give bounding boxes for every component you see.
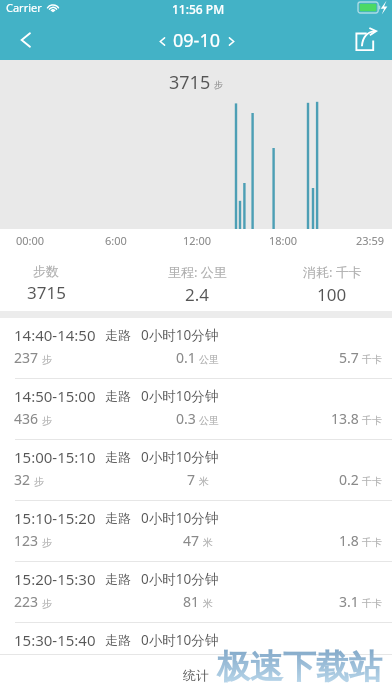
staticText: 15:00-15:10 — [14, 447, 96, 467]
button[interactable]: Back — [0, 20, 52, 60]
staticText: 步数 — [33, 263, 59, 279]
staticText: 3715 — [27, 281, 66, 304]
staticText: 步 — [42, 597, 52, 610]
button[interactable]: 里程: 公里 — [142, 255, 252, 306]
staticText: 100 — [317, 283, 347, 306]
staticText: 消耗: 千卡 — [303, 263, 362, 281]
staticText: 09-10 — [173, 28, 220, 53]
staticText: 走路 — [105, 632, 131, 648]
staticText: 81 — [183, 592, 200, 611]
staticText: 14:40-14:50 — [14, 325, 96, 345]
staticText: 7 — [187, 470, 196, 489]
staticText: 米 — [203, 597, 213, 610]
staticText: 15:30-15:40 — [14, 630, 96, 650]
staticText: 步 — [42, 536, 52, 549]
staticText: 走路 — [105, 510, 131, 526]
staticText: 走路 — [105, 449, 131, 465]
button[interactable]: Next day — [220, 30, 242, 52]
staticText: 12:00 — [183, 233, 212, 248]
staticText: 走路 — [105, 388, 131, 404]
staticText: 千卡 — [362, 353, 382, 366]
staticText: 6:00 — [105, 233, 127, 248]
button[interactable]: Share — [340, 20, 392, 60]
staticText: 1.8 — [339, 531, 359, 550]
staticText: 0.2 — [339, 470, 359, 489]
staticText: 千卡 — [362, 414, 382, 427]
staticText: 0小时10分钟 — [141, 570, 219, 588]
staticText: 极速下载站 — [217, 646, 382, 688]
staticText: 千卡 — [362, 475, 382, 488]
button[interactable]: 15:30-15:40 — [0, 623, 392, 684]
staticText: 15:10-15:20 — [14, 508, 96, 528]
button[interactable]: 步数 — [0, 255, 101, 304]
staticText: 223 — [14, 592, 39, 611]
staticText: 步 — [42, 414, 52, 427]
staticText: 00:00 — [16, 233, 45, 248]
staticText: 步 — [42, 353, 52, 366]
staticText: 0.1 — [176, 348, 196, 367]
button[interactable]: Previous day — [151, 30, 173, 52]
staticText: 123 — [14, 531, 39, 550]
staticText: 0.3 — [176, 409, 196, 428]
staticText: 13.8 — [331, 409, 359, 428]
staticText: 11:56 PM — [172, 1, 225, 17]
staticText: 2.4 — [185, 283, 210, 306]
staticText: Carrier — [6, 0, 42, 15]
staticText: 千卡 — [362, 536, 382, 549]
staticText: 走路 — [105, 327, 131, 343]
staticText: 步 — [34, 475, 44, 488]
staticText: 3.1 — [339, 592, 359, 611]
staticText: 公里 — [199, 414, 219, 427]
staticText: 步 — [214, 79, 223, 90]
button[interactable]: 统计 — [130, 654, 261, 696]
staticText: 32 — [14, 470, 31, 489]
button[interactable]: 14:40-14:50 — [0, 318, 392, 379]
staticText: 14:50-15:00 — [14, 386, 96, 406]
staticText: 23:59 — [356, 233, 385, 248]
staticText: 18:00 — [269, 233, 298, 248]
staticText: 0小时10分钟 — [141, 631, 219, 649]
staticText: 0小时10分钟 — [141, 387, 219, 405]
staticText: 0小时10分钟 — [141, 326, 219, 344]
staticText: 米 — [199, 475, 209, 488]
staticText: 436 — [14, 409, 39, 428]
staticText: 公里 — [199, 353, 219, 366]
button[interactable]: 15:20-15:30 — [0, 562, 392, 623]
staticText: 15:20-15:30 — [14, 569, 96, 589]
staticText: 237 — [14, 348, 39, 367]
staticText: 走路 — [105, 571, 131, 587]
staticText: 47 — [183, 531, 200, 550]
staticText: 5.7 — [339, 348, 359, 367]
staticText: 里程: 公里 — [168, 263, 227, 281]
staticText: 0小时10分钟 — [141, 509, 219, 527]
button[interactable]: 14:50-15:00 — [0, 379, 392, 440]
button[interactable]: 15:00-15:10 — [0, 440, 392, 501]
staticText: 千卡 — [362, 597, 382, 610]
staticText: 0小时10分钟 — [141, 448, 219, 466]
staticText: 3715 — [169, 70, 211, 95]
staticText: 统计 — [183, 667, 209, 683]
button[interactable]: 15:10-15:20 — [0, 501, 392, 562]
staticText: 米 — [203, 536, 213, 549]
button[interactable]: 消耗: 千卡 — [277, 255, 387, 306]
